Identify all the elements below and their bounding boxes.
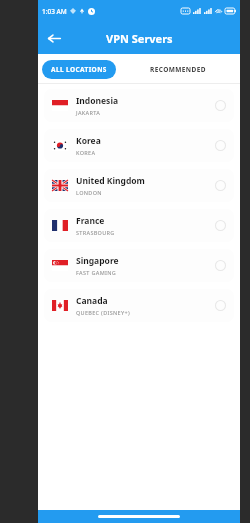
staticText: KOREA <box>76 149 96 156</box>
button[interactable]: France <box>44 209 234 242</box>
staticText: 1:03 AM <box>42 7 67 16</box>
staticText: FAST GAMING <box>76 269 117 276</box>
staticText: France <box>76 215 105 227</box>
button[interactable]: Singapore <box>44 249 234 282</box>
staticText: Indonesia <box>76 95 119 107</box>
staticText: Canada <box>76 295 108 307</box>
staticText: RECOMMENDED <box>150 65 206 74</box>
button[interactable]: RECOMMENDED <box>116 60 240 79</box>
staticText: Korea <box>76 135 101 147</box>
button[interactable]: Back <box>43 27 65 49</box>
button[interactable]: ALL LOCATIONS <box>42 60 116 79</box>
staticText: United Kingdom <box>76 175 145 187</box>
staticText: ALL LOCATIONS <box>51 65 107 74</box>
staticText: LONDON <box>76 189 102 196</box>
staticText: VPN Servers <box>106 31 173 46</box>
staticText: Singapore <box>76 255 119 267</box>
button[interactable]: Canada <box>44 289 234 322</box>
staticText: JAKARTA <box>76 109 101 116</box>
staticText: QUEBEC (DISNEY+) <box>76 309 130 316</box>
staticText: STRASBOURG <box>76 229 115 236</box>
button[interactable]: Korea <box>44 129 234 162</box>
button[interactable]: Indonesia <box>44 89 234 122</box>
button[interactable]: United Kingdom <box>44 169 234 202</box>
